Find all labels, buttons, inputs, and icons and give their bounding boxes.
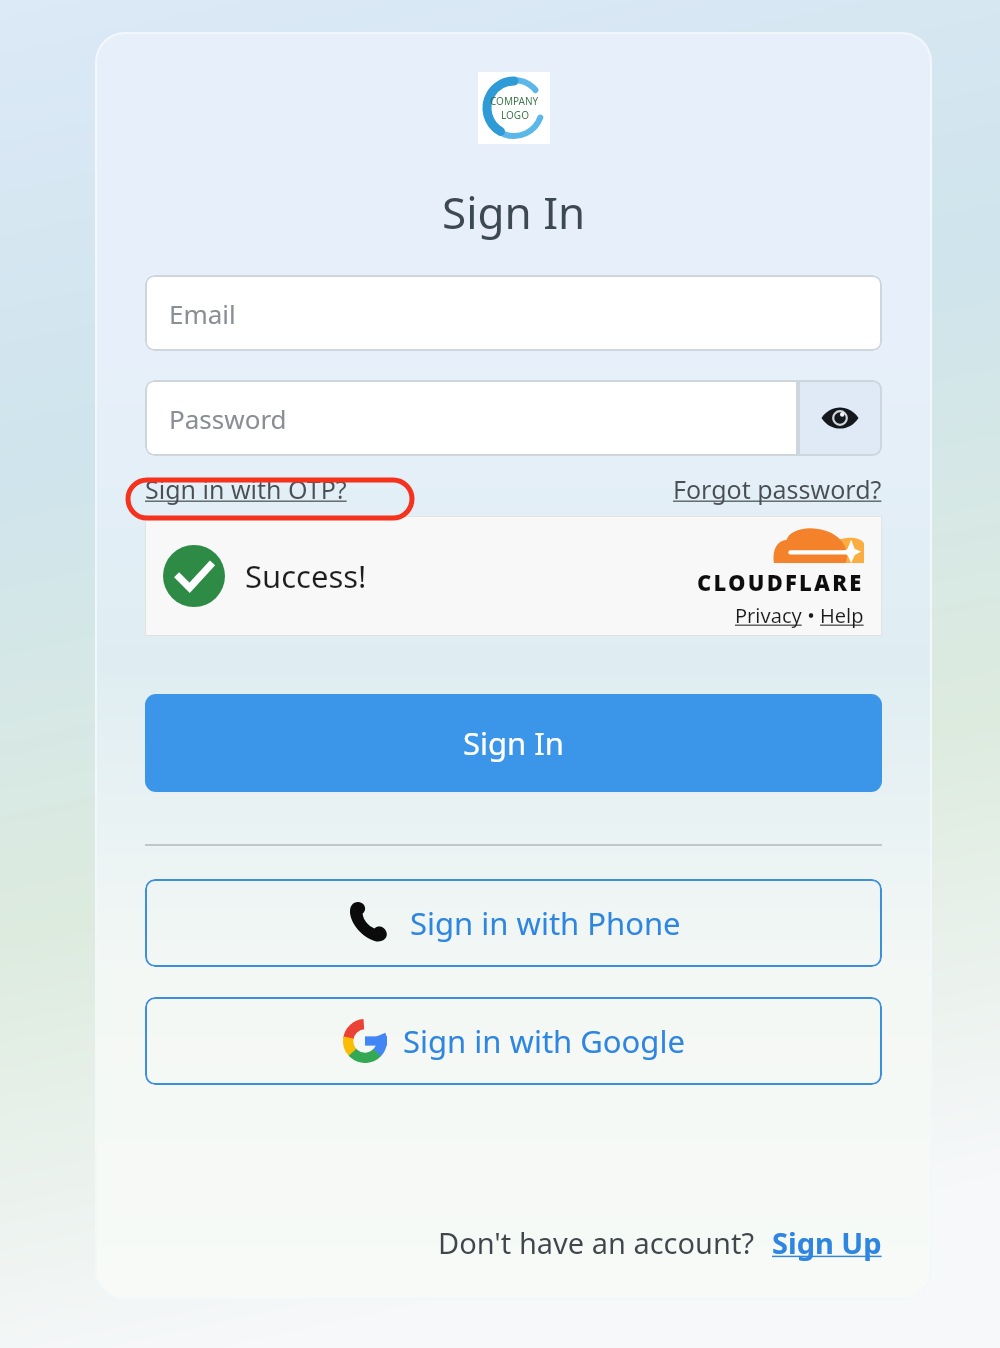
staticText: Help — [820, 602, 864, 629]
staticText: Sign in with Google — [403, 1020, 685, 1062]
button[interactable]: Forgot password? — [673, 472, 882, 506]
staticText: COMPANY — [490, 94, 539, 108]
staticText: CLOUDFLARE — [697, 567, 864, 597]
button[interactable]: Help — [820, 602, 864, 629]
button[interactable]: Sign in with OTP? — [145, 472, 347, 506]
button[interactable]: Sign In — [145, 694, 882, 792]
staticText: Forgot password? — [673, 472, 882, 506]
staticText: Sign Up — [772, 1223, 882, 1262]
staticText: Success! — [245, 555, 367, 597]
staticText: Don't have an account? — [438, 1223, 754, 1262]
button[interactable]: Sign in with Google — [145, 997, 882, 1085]
button[interactable]: Sign Up — [772, 1223, 882, 1262]
staticText: Sign In — [463, 722, 564, 764]
staticText: Sign in with OTP? — [145, 472, 347, 506]
staticText: Sign in with Phone — [410, 902, 681, 944]
button[interactable]: Privacy — [735, 602, 802, 629]
staticText: Password — [169, 401, 287, 436]
button[interactable]: Sign in with Phone — [145, 879, 882, 967]
staticText: • — [802, 602, 820, 629]
staticText: Email — [169, 296, 236, 331]
staticText: LOGO — [501, 108, 529, 122]
button[interactable]: Password — [145, 380, 798, 456]
staticText: Privacy — [735, 602, 802, 629]
staticText: Sign In — [442, 182, 586, 242]
button[interactable]: Email — [145, 275, 882, 351]
button[interactable]: Show password — [798, 380, 882, 456]
